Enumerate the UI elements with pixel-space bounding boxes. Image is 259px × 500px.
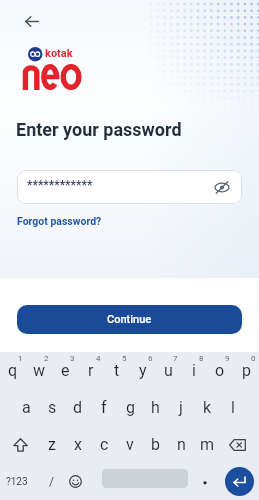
button[interactable]: p (233, 352, 259, 389)
button[interactable]: s (39, 389, 65, 426)
staticText: 9 (225, 354, 230, 363)
staticText: 2 (44, 354, 49, 363)
button[interactable] (5, 426, 35, 463)
button[interactable] (196, 463, 214, 500)
staticText: Continue (107, 313, 152, 326)
staticText: x (74, 435, 82, 454)
staticText: 6 (148, 354, 153, 363)
button[interactable]: ?123 (1, 463, 33, 500)
staticText: 4 (96, 354, 101, 363)
staticText: s (48, 398, 57, 417)
staticText: g (126, 398, 135, 417)
staticText: i (192, 361, 196, 380)
staticText: / (49, 475, 54, 489)
button[interactable]: r (78, 352, 104, 389)
staticText: h (151, 398, 160, 417)
staticText: 1 (18, 354, 23, 363)
button[interactable]: m (194, 426, 220, 463)
button[interactable] (221, 426, 254, 463)
staticText: j (179, 398, 183, 417)
button[interactable]: t (104, 352, 130, 389)
button[interactable]: ************ (17, 170, 242, 204)
staticText: 3 (70, 354, 75, 363)
staticText: kotak (45, 47, 73, 60)
staticText: u (164, 361, 173, 380)
staticText: 5 (122, 354, 127, 363)
button[interactable]: k (194, 389, 220, 426)
button[interactable]: c (91, 426, 117, 463)
staticText: ?123 (6, 476, 28, 488)
staticText: c (100, 435, 109, 454)
button[interactable]: w (26, 352, 52, 389)
button[interactable]: v (117, 426, 143, 463)
staticText: e (61, 361, 70, 380)
staticText: t (114, 361, 120, 380)
staticText: 7 (173, 354, 178, 363)
button[interactable]: n (168, 426, 194, 463)
staticText: d (73, 398, 83, 417)
staticText: 8 (199, 354, 204, 363)
button[interactable]: / (41, 463, 61, 500)
staticText: l (231, 398, 235, 417)
button[interactable]: h (142, 389, 168, 426)
staticText: o (215, 361, 225, 380)
staticText: q (8, 361, 18, 380)
button[interactable]: l (220, 389, 246, 426)
button[interactable]: Continue (17, 305, 242, 334)
button[interactable]: u (155, 352, 181, 389)
button[interactable]: j (168, 389, 194, 426)
button[interactable]: Forgot password? (17, 215, 102, 227)
staticText: Enter your password (16, 119, 182, 140)
staticText: p (242, 361, 251, 380)
button[interactable]: g (117, 389, 143, 426)
staticText: z (48, 435, 56, 454)
staticText: 0 (251, 354, 256, 363)
button[interactable] (18, 8, 46, 34)
staticText: n (177, 435, 186, 454)
staticText: b (151, 435, 160, 454)
staticText: r (88, 361, 94, 380)
staticText: f (101, 398, 107, 417)
button[interactable]: q (0, 352, 26, 389)
staticText: ************ (27, 178, 93, 192)
staticText: w (33, 361, 46, 380)
button[interactable]: e (52, 352, 78, 389)
staticText: a (22, 398, 31, 417)
button[interactable]: d (65, 389, 91, 426)
button[interactable]: b (142, 426, 168, 463)
button[interactable]: y (130, 352, 156, 389)
button[interactable]: o (207, 352, 233, 389)
button[interactable]: f (91, 389, 117, 426)
button[interactable]: x (65, 426, 91, 463)
staticText: m (200, 435, 215, 454)
staticText: v (126, 435, 134, 454)
button[interactable] (225, 467, 254, 496)
staticText: k (203, 398, 212, 417)
button[interactable] (63, 463, 87, 500)
button[interactable]: a (13, 389, 39, 426)
button[interactable]: z (39, 426, 65, 463)
staticText: y (139, 361, 147, 380)
button[interactable]: i (181, 352, 207, 389)
